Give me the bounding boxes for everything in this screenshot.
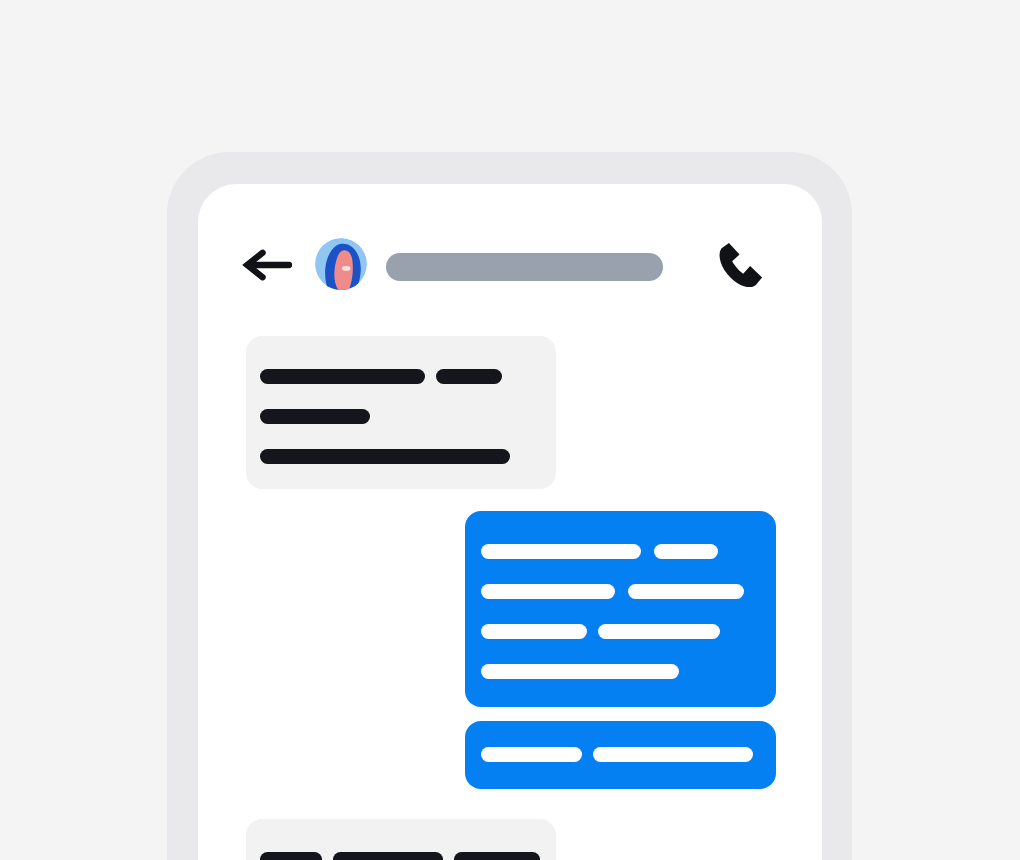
button[interactable] [386,253,663,281]
button[interactable] [246,819,556,860]
button[interactable]: Call [710,236,770,296]
button[interactable] [465,511,776,707]
button[interactable]: Back [236,238,298,292]
button[interactable] [246,336,556,489]
button[interactable] [465,721,776,789]
button[interactable]: Contact avatar [315,238,367,290]
